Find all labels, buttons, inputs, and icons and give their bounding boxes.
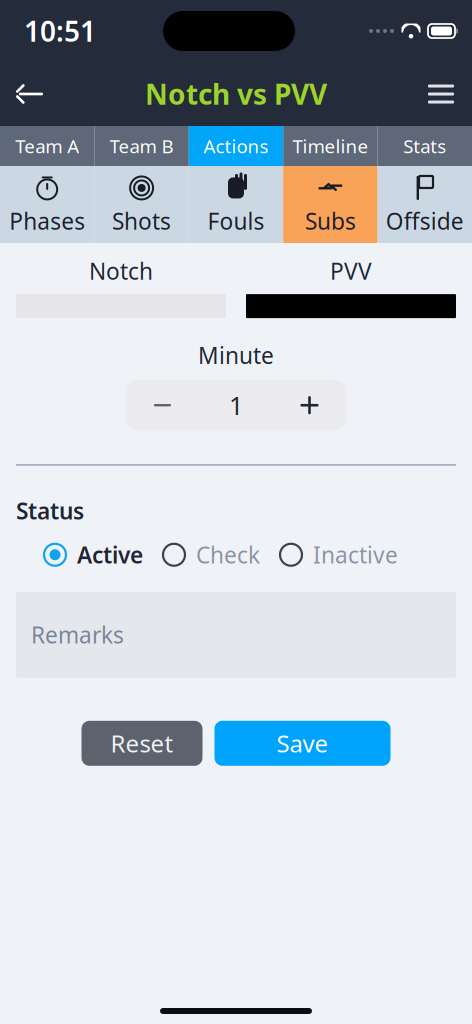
staticText: Remarks [31, 620, 124, 650]
staticText: Timeline [292, 134, 368, 158]
button[interactable]: Shots [94, 166, 189, 243]
staticText: Subs [305, 206, 356, 236]
button[interactable]: Subs [283, 166, 378, 243]
staticText: Phases [9, 206, 85, 236]
staticText: Active [77, 540, 143, 570]
staticText: Save [276, 727, 328, 759]
staticText: 10:51 [24, 12, 96, 50]
button[interactable]: Decrease minute [126, 380, 199, 430]
staticText: Inactive [313, 540, 398, 570]
staticText: Status [16, 496, 84, 526]
staticText: Notch [89, 256, 153, 286]
staticText: PVV [330, 256, 372, 286]
staticText: Stats [403, 134, 446, 158]
button[interactable]: Save [214, 721, 390, 766]
button[interactable]: Offside [378, 166, 472, 243]
button[interactable]: Phases [0, 166, 94, 243]
staticText: 1 [229, 388, 243, 422]
staticText: Actions [203, 134, 268, 158]
staticText: Check [196, 540, 260, 570]
staticText: Reset [110, 727, 173, 759]
button[interactable]: Active [44, 540, 143, 570]
button[interactable]: Stats [378, 126, 472, 166]
staticText: Minute [198, 340, 274, 370]
button[interactable]: Fouls [189, 166, 283, 243]
button[interactable]: Actions [189, 126, 283, 166]
button[interactable]: Back [0, 62, 62, 126]
button[interactable]: Increase minute [273, 380, 346, 430]
staticText: Fouls [207, 206, 264, 236]
button[interactable]: Team B [94, 126, 189, 166]
staticText: Shots [112, 206, 171, 236]
button[interactable]: Timeline [283, 126, 378, 166]
staticText: Offside [386, 206, 464, 236]
staticText: Team A [15, 134, 79, 158]
button[interactable]: Reset [81, 721, 202, 766]
staticText: Notch vs PVV [145, 75, 327, 113]
button[interactable]: Team A [0, 126, 94, 166]
button[interactable]: Menu [410, 62, 472, 126]
button[interactable]: Inactive [280, 540, 398, 570]
staticText: Team B [110, 134, 174, 158]
button[interactable]: Check [163, 540, 260, 570]
button[interactable]: Remarks [16, 592, 456, 678]
